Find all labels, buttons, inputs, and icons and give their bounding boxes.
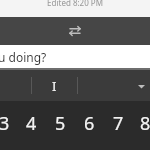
button[interactable]: More suggestions — [132, 77, 150, 95]
button[interactable]: u doing? — [0, 45, 150, 68]
staticText: 4 — [26, 111, 37, 136]
button[interactable]: 6 — [75, 101, 104, 150]
staticText: 6 — [84, 111, 95, 136]
staticText: 3 — [0, 111, 10, 136]
staticText: Edited 8:20 PM — [47, 0, 103, 8]
staticText: 8 — [140, 111, 150, 136]
staticText: u doing? — [0, 49, 47, 65]
button[interactable]: 5 — [46, 101, 75, 150]
button[interactable]: Swap languages — [62, 18, 88, 44]
staticText: I — [52, 77, 57, 95]
button[interactable]: 3 — [0, 101, 17, 150]
staticText: 7 — [113, 111, 124, 136]
staticText: 5 — [55, 111, 66, 136]
button[interactable]: I — [32, 70, 77, 101]
button[interactable]: 8 — [133, 101, 150, 150]
button[interactable]: 4 — [17, 101, 46, 150]
button[interactable]: 7 — [104, 101, 133, 150]
